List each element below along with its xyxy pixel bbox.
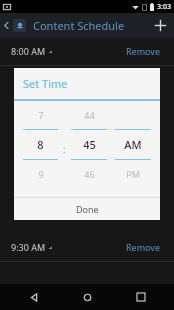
staticText: PM bbox=[126, 168, 140, 180]
button[interactable]: Navigate up bbox=[0, 13, 13, 38]
button[interactable]: 9:30 AM bbox=[0, 237, 174, 257]
staticText: 9:30 AM bbox=[11, 241, 46, 253]
button[interactable]: Remove bbox=[124, 43, 163, 59]
staticText: Remove bbox=[126, 45, 161, 57]
staticText: 44 bbox=[84, 109, 95, 121]
button[interactable]: Recent apps bbox=[121, 284, 161, 310]
staticText: Set Time bbox=[23, 76, 68, 91]
staticText: 8:00 AM bbox=[11, 45, 46, 57]
staticText: 9 bbox=[38, 168, 44, 180]
button[interactable]: Done bbox=[14, 198, 160, 220]
staticText: 45 bbox=[83, 137, 96, 152]
button[interactable]: 7 bbox=[21, 101, 60, 197]
button[interactable]: Add bbox=[147, 13, 174, 38]
staticText: Content Schedule bbox=[33, 18, 147, 33]
staticText: : bbox=[63, 143, 66, 155]
staticText: AM bbox=[124, 137, 142, 152]
staticText: 3:03 bbox=[157, 2, 171, 12]
button[interactable]: Back bbox=[14, 284, 54, 310]
button[interactable]: 44 bbox=[69, 101, 109, 197]
staticText: 46 bbox=[84, 168, 95, 180]
staticText: 7 bbox=[38, 109, 44, 121]
button[interactable]: Home bbox=[67, 284, 107, 310]
staticText: Remove bbox=[126, 241, 161, 253]
button[interactable]: Remove bbox=[124, 239, 163, 255]
button[interactable]: AM bbox=[113, 101, 153, 197]
button[interactable]: 8:00 AM bbox=[0, 41, 174, 61]
staticText: 8 bbox=[37, 137, 44, 152]
staticText: Done bbox=[76, 203, 99, 215]
